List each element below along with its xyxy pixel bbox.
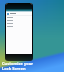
button[interactable] — [7, 20, 32, 21]
staticText: Customize your — [2, 61, 34, 66]
button[interactable] — [7, 23, 32, 24]
button[interactable] — [7, 17, 32, 18]
button[interactable] — [7, 12, 32, 15]
staticText: Lock Screen — [2, 66, 26, 71]
button[interactable] — [7, 26, 32, 27]
